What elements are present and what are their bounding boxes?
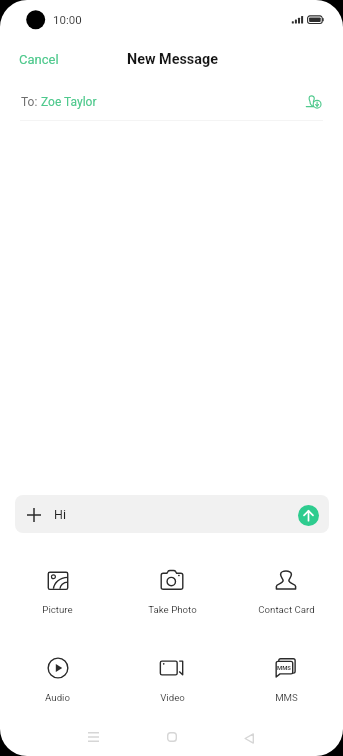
staticText: Zoe Taylor	[41, 95, 97, 109]
staticText: 10:00	[53, 13, 82, 26]
button[interactable]: Back	[229, 718, 269, 756]
button[interactable]: Audio	[0, 651, 115, 708]
button[interactable]: Recents	[73, 717, 113, 756]
button[interactable]: Video	[115, 651, 229, 708]
button[interactable]: Contact Card	[229, 563, 343, 620]
staticText: Video	[160, 692, 185, 703]
staticText: Cancel	[19, 52, 59, 67]
staticText: MMS	[277, 665, 291, 672]
button[interactable]: Take Photo	[115, 563, 229, 620]
staticText: MMS	[275, 692, 298, 703]
staticText: Picture	[42, 604, 73, 615]
staticText: Contact Card	[258, 604, 315, 615]
button[interactable]: Picture	[0, 563, 115, 620]
button[interactable]: Cancel	[0, 43, 80, 76]
staticText: Audio	[45, 692, 70, 703]
button[interactable]: Send	[298, 505, 319, 526]
staticText: New Message	[127, 51, 218, 68]
button[interactable]: Home	[152, 717, 192, 756]
staticText: Take Photo	[148, 604, 197, 615]
button[interactable]: Add attachment	[19, 500, 49, 530]
button[interactable]: Add contact	[299, 87, 327, 115]
button[interactable]: Add attachment	[15, 495, 329, 533]
staticText: Hi	[54, 507, 66, 522]
button[interactable]: MMS	[229, 651, 343, 708]
staticText: To:	[21, 95, 41, 109]
